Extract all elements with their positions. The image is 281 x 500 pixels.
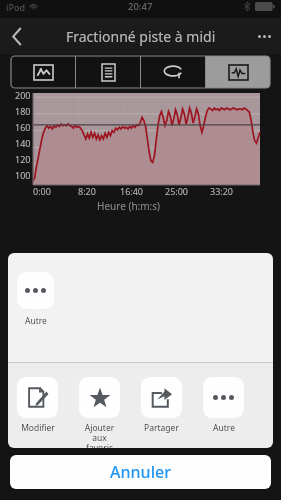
staticText: 33:20 — [210, 185, 234, 197]
staticText: 100 — [15, 169, 31, 181]
staticText: 16:40 — [120, 185, 144, 197]
button[interactable]: Annuler — [10, 455, 271, 489]
staticText: Annuler — [110, 461, 171, 483]
staticText: Heure (h:m:s) — [97, 199, 161, 213]
staticText: 16.13 cm — [18, 385, 112, 415]
button[interactable]: Back — [0, 18, 34, 54]
staticText: 200 — [15, 89, 31, 101]
button[interactable]: Autre — [17, 272, 54, 309]
staticText: 180 — [15, 105, 31, 117]
staticText: Autre — [25, 315, 47, 327]
staticText: Ajouter aux favoris — [79, 422, 120, 448]
staticText: Modifier — [21, 422, 55, 434]
button[interactable]: Modifier — [17, 377, 58, 434]
staticText: Partager — [144, 422, 179, 434]
button[interactable]: Details — [76, 56, 140, 88]
staticText: 140 — [15, 137, 31, 149]
staticText: Autre — [213, 422, 235, 434]
button[interactable]: Partager — [141, 377, 182, 434]
button[interactable]: Ajouter aux favoris — [79, 377, 120, 448]
staticText: 160 — [15, 121, 31, 133]
button[interactable]: Map — [11, 56, 75, 88]
button[interactable]: Charts — [206, 56, 270, 88]
button[interactable]: Laps — [141, 56, 205, 88]
button[interactable]: Autre — [203, 377, 244, 434]
staticText: 0:00 — [33, 185, 51, 197]
staticText: Fractionné piste à midi — [66, 27, 216, 46]
staticText: 25:00 — [165, 185, 189, 197]
button[interactable]: More options — [247, 18, 281, 54]
staticText: iPod — [6, 1, 25, 13]
staticText: 20:47 — [128, 0, 153, 13]
staticText: 8:20 — [78, 185, 96, 197]
staticText: Oscillation verticale (cm) — [10, 349, 198, 371]
staticText: 120 — [15, 153, 31, 165]
